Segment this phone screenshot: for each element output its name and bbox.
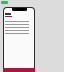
button[interactable]: Badge <box>1 1 8 4</box>
button[interactable] <box>5 29 33 32</box>
button[interactable] <box>5 12 33 16</box>
button[interactable] <box>5 20 33 23</box>
button[interactable] <box>5 23 33 26</box>
button[interactable] <box>5 32 33 35</box>
button[interactable] <box>5 26 33 29</box>
